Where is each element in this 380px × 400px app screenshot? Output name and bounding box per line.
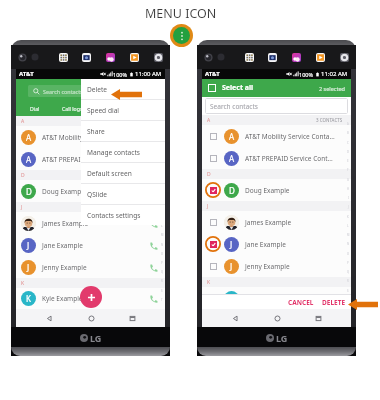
button[interactable]: A [202, 125, 351, 147]
button[interactable]: Home [83, 310, 99, 326]
staticText: O [347, 252, 350, 256]
button[interactable]: Search contacts [28, 85, 157, 97]
staticText: LG [90, 332, 102, 344]
button[interactable]: Speed dial [81, 100, 165, 120]
staticText: Doug Example [245, 186, 346, 195]
staticText: James Example [42, 219, 149, 228]
button[interactable]: Menu [170, 24, 193, 47]
button[interactable]: Recent apps [310, 310, 326, 326]
staticText: J [27, 240, 30, 251]
staticText: Manage contacts [87, 148, 140, 157]
button[interactable]: DELETE [318, 296, 350, 309]
staticText: Jenny Example [42, 263, 149, 272]
button[interactable]: Back [41, 310, 57, 326]
staticText: Contacts settings [87, 211, 141, 220]
staticText: J [230, 239, 233, 250]
staticText: K [347, 215, 349, 219]
button[interactable]: K [16, 288, 165, 309]
staticText: QSlide [87, 190, 107, 199]
staticText: H [347, 187, 349, 191]
staticText: Kyle Example [42, 294, 149, 303]
button[interactable]: Back [227, 310, 243, 326]
button[interactable]: D [16, 180, 165, 202]
button[interactable]: Select all [202, 79, 351, 97]
button[interactable]: CANCEL [284, 296, 318, 309]
button[interactable]: Default screen [81, 163, 165, 183]
button[interactable]: Recent apps [124, 310, 140, 326]
staticText: A [26, 132, 32, 143]
button[interactable]: A [16, 148, 165, 170]
staticText: Call logs [62, 105, 83, 112]
staticText: Select all [222, 83, 254, 93]
staticText: M [347, 233, 350, 237]
button[interactable]: QSlide [81, 184, 165, 204]
staticText: AT&T [205, 70, 220, 78]
staticText: M [161, 233, 164, 237]
staticText: AT&T Mobility Service Conta... [245, 132, 346, 141]
button[interactable]: James Example [202, 211, 351, 233]
staticText: CANCEL [288, 298, 314, 307]
staticText: AT&T [19, 70, 34, 78]
staticText: Jane Example [42, 241, 149, 250]
staticText: AT&T Mobility Service Conta... [42, 133, 149, 142]
staticText: AT&T PREPAID Service Cont... [42, 155, 149, 164]
staticText: P [161, 261, 163, 265]
staticText: MENU ICON [145, 5, 217, 22]
staticText: A [207, 117, 211, 124]
staticText: Delete [87, 85, 108, 94]
staticText: K [26, 293, 31, 304]
button[interactable]: Contacts settings [81, 205, 165, 225]
staticText: D [21, 172, 25, 179]
staticText: Search contacts [43, 88, 83, 95]
button[interactable]: Delete [81, 79, 165, 99]
button[interactable]: Call logs [54, 100, 91, 116]
button[interactable]: J [16, 256, 165, 278]
staticText: Jane Example [245, 240, 346, 249]
button[interactable]: J [202, 233, 351, 255]
button[interactable]: J [16, 234, 165, 256]
button[interactable]: K [202, 287, 351, 309]
staticText: J [21, 204, 23, 211]
staticText: 11:02 AM [321, 70, 348, 78]
button[interactable]: Search contacts [205, 98, 348, 114]
button[interactable]: Manage contacts [81, 142, 165, 162]
staticText: D [207, 171, 211, 178]
staticText: L [161, 224, 163, 228]
staticText: 100% [113, 71, 128, 78]
staticText: L [347, 224, 349, 228]
button[interactable]: Add contact [80, 286, 102, 308]
staticText: 3 CONTACTS [316, 117, 343, 123]
button[interactable]: A [202, 147, 351, 169]
button[interactable]: Dial [16, 100, 54, 116]
staticText: E [161, 160, 163, 164]
staticText: R [161, 279, 163, 283]
button[interactable]: James Example [16, 212, 165, 234]
staticText: P [347, 261, 349, 265]
staticText: Jenny Example [245, 262, 346, 271]
staticText: T [161, 298, 163, 302]
button[interactable]: Share [81, 121, 165, 141]
button[interactable]: Home [269, 310, 285, 326]
staticText: LG [276, 332, 288, 344]
staticText: E [347, 159, 349, 163]
staticText: Search contacts [210, 102, 258, 111]
staticText: D [347, 150, 349, 154]
button[interactable]: J [202, 255, 351, 277]
button[interactable]: Contacts [91, 100, 128, 116]
staticText: B [347, 131, 349, 135]
button[interactable]: A [16, 126, 165, 148]
staticText: N [347, 242, 349, 246]
button[interactable]: D [202, 179, 351, 201]
staticText: Kyle Example [245, 294, 346, 303]
